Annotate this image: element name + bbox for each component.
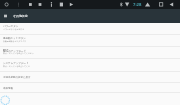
button[interactable]: 工場出荷時の設定に戻す (0, 72, 180, 83)
button[interactable]: パワーボタン (0, 23, 180, 35)
staticText: 7:28 (133, 2, 142, 8)
staticText: パワーボタン (3, 25, 19, 28)
staticText: 警告：エンジンを停止してください (3, 52, 34, 54)
button[interactable]: 再起動ホットボタン (0, 35, 180, 47)
staticText: 自動再起動をカスタマイズ (3, 40, 26, 42)
staticText: 工場出荷時の設定に戻す (3, 76, 31, 79)
staticText: パワーボタンを設定する (3, 28, 25, 30)
staticText: MSCのアップロード (3, 49, 27, 52)
staticText: 本体情報 (3, 87, 13, 90)
staticText: システムアップデート (3, 62, 29, 65)
staticText: 警告：エンジンを停止してくだ (3, 65, 30, 67)
button[interactable]: システムアップデート (0, 59, 180, 72)
button[interactable]: 本体情報 (0, 83, 180, 93)
staticText: その他設定 (13, 14, 28, 18)
staticText: 再起動ホットボタン (3, 37, 26, 40)
button[interactable]: Menu (0, 9, 11, 23)
button[interactable]: MSCのアップロード (0, 47, 180, 59)
